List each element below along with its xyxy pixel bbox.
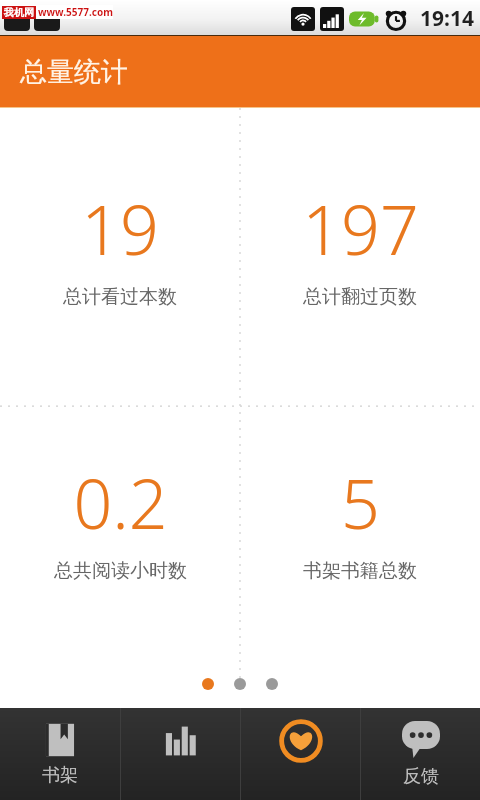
staticText: 19:14 [420,4,474,33]
staticText: 反馈 [403,765,439,788]
staticText: 总计翻过页数 [303,285,417,309]
staticText: 总计看过本数 [63,285,177,309]
button[interactable]: 反馈 [361,708,480,800]
button[interactable]: 书架 [0,708,120,800]
staticText: 书架 [42,764,78,787]
button[interactable]: 197 [240,108,480,382]
staticText: www.5577.com [38,5,113,19]
button[interactable]: 0.2 [0,382,240,656]
staticText: 总共阅读小时数 [54,559,187,583]
staticText: 19 [81,182,159,275]
button[interactable]: Favorites [241,708,360,800]
staticText: 书架书籍总数 [303,559,417,583]
button[interactable]: 5 [240,382,480,656]
button[interactable]: 19 [0,108,240,382]
staticText: 我机网 [4,6,34,19]
staticText: 0.2 [73,456,168,549]
button[interactable]: Statistics [121,708,240,800]
staticText: 5 [341,456,380,549]
staticText: 197 [302,182,419,275]
staticText: 总量统计 [20,55,128,89]
